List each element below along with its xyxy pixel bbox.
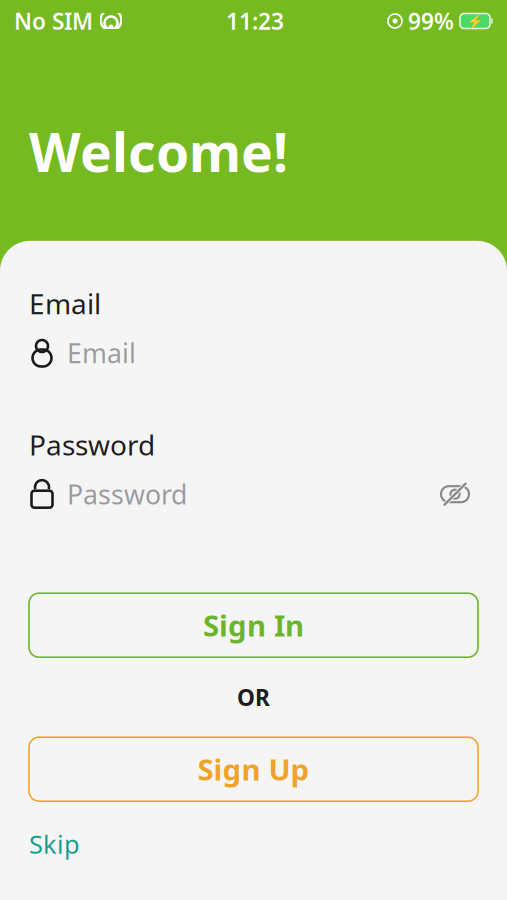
staticText: Sign In (203, 606, 304, 645)
staticText: OR (237, 682, 270, 712)
staticText: 99% (408, 6, 454, 36)
button[interactable]: Sign In (29, 593, 478, 657)
button[interactable]: Skip (29, 823, 80, 865)
staticText: Email (67, 335, 136, 371)
button[interactable]: Sign Up (29, 737, 478, 801)
button[interactable]: Show password (432, 473, 478, 515)
staticText: No SIM (14, 6, 93, 36)
staticText: Welcome! (29, 116, 288, 187)
staticText: Sign Up (197, 750, 309, 789)
staticText: 11:23 (226, 6, 284, 36)
staticText: Password (67, 476, 187, 512)
staticText: Skip (29, 827, 80, 861)
staticText: ⚡ (466, 13, 483, 29)
staticText: Password (29, 426, 155, 463)
staticText: Email (29, 285, 101, 322)
